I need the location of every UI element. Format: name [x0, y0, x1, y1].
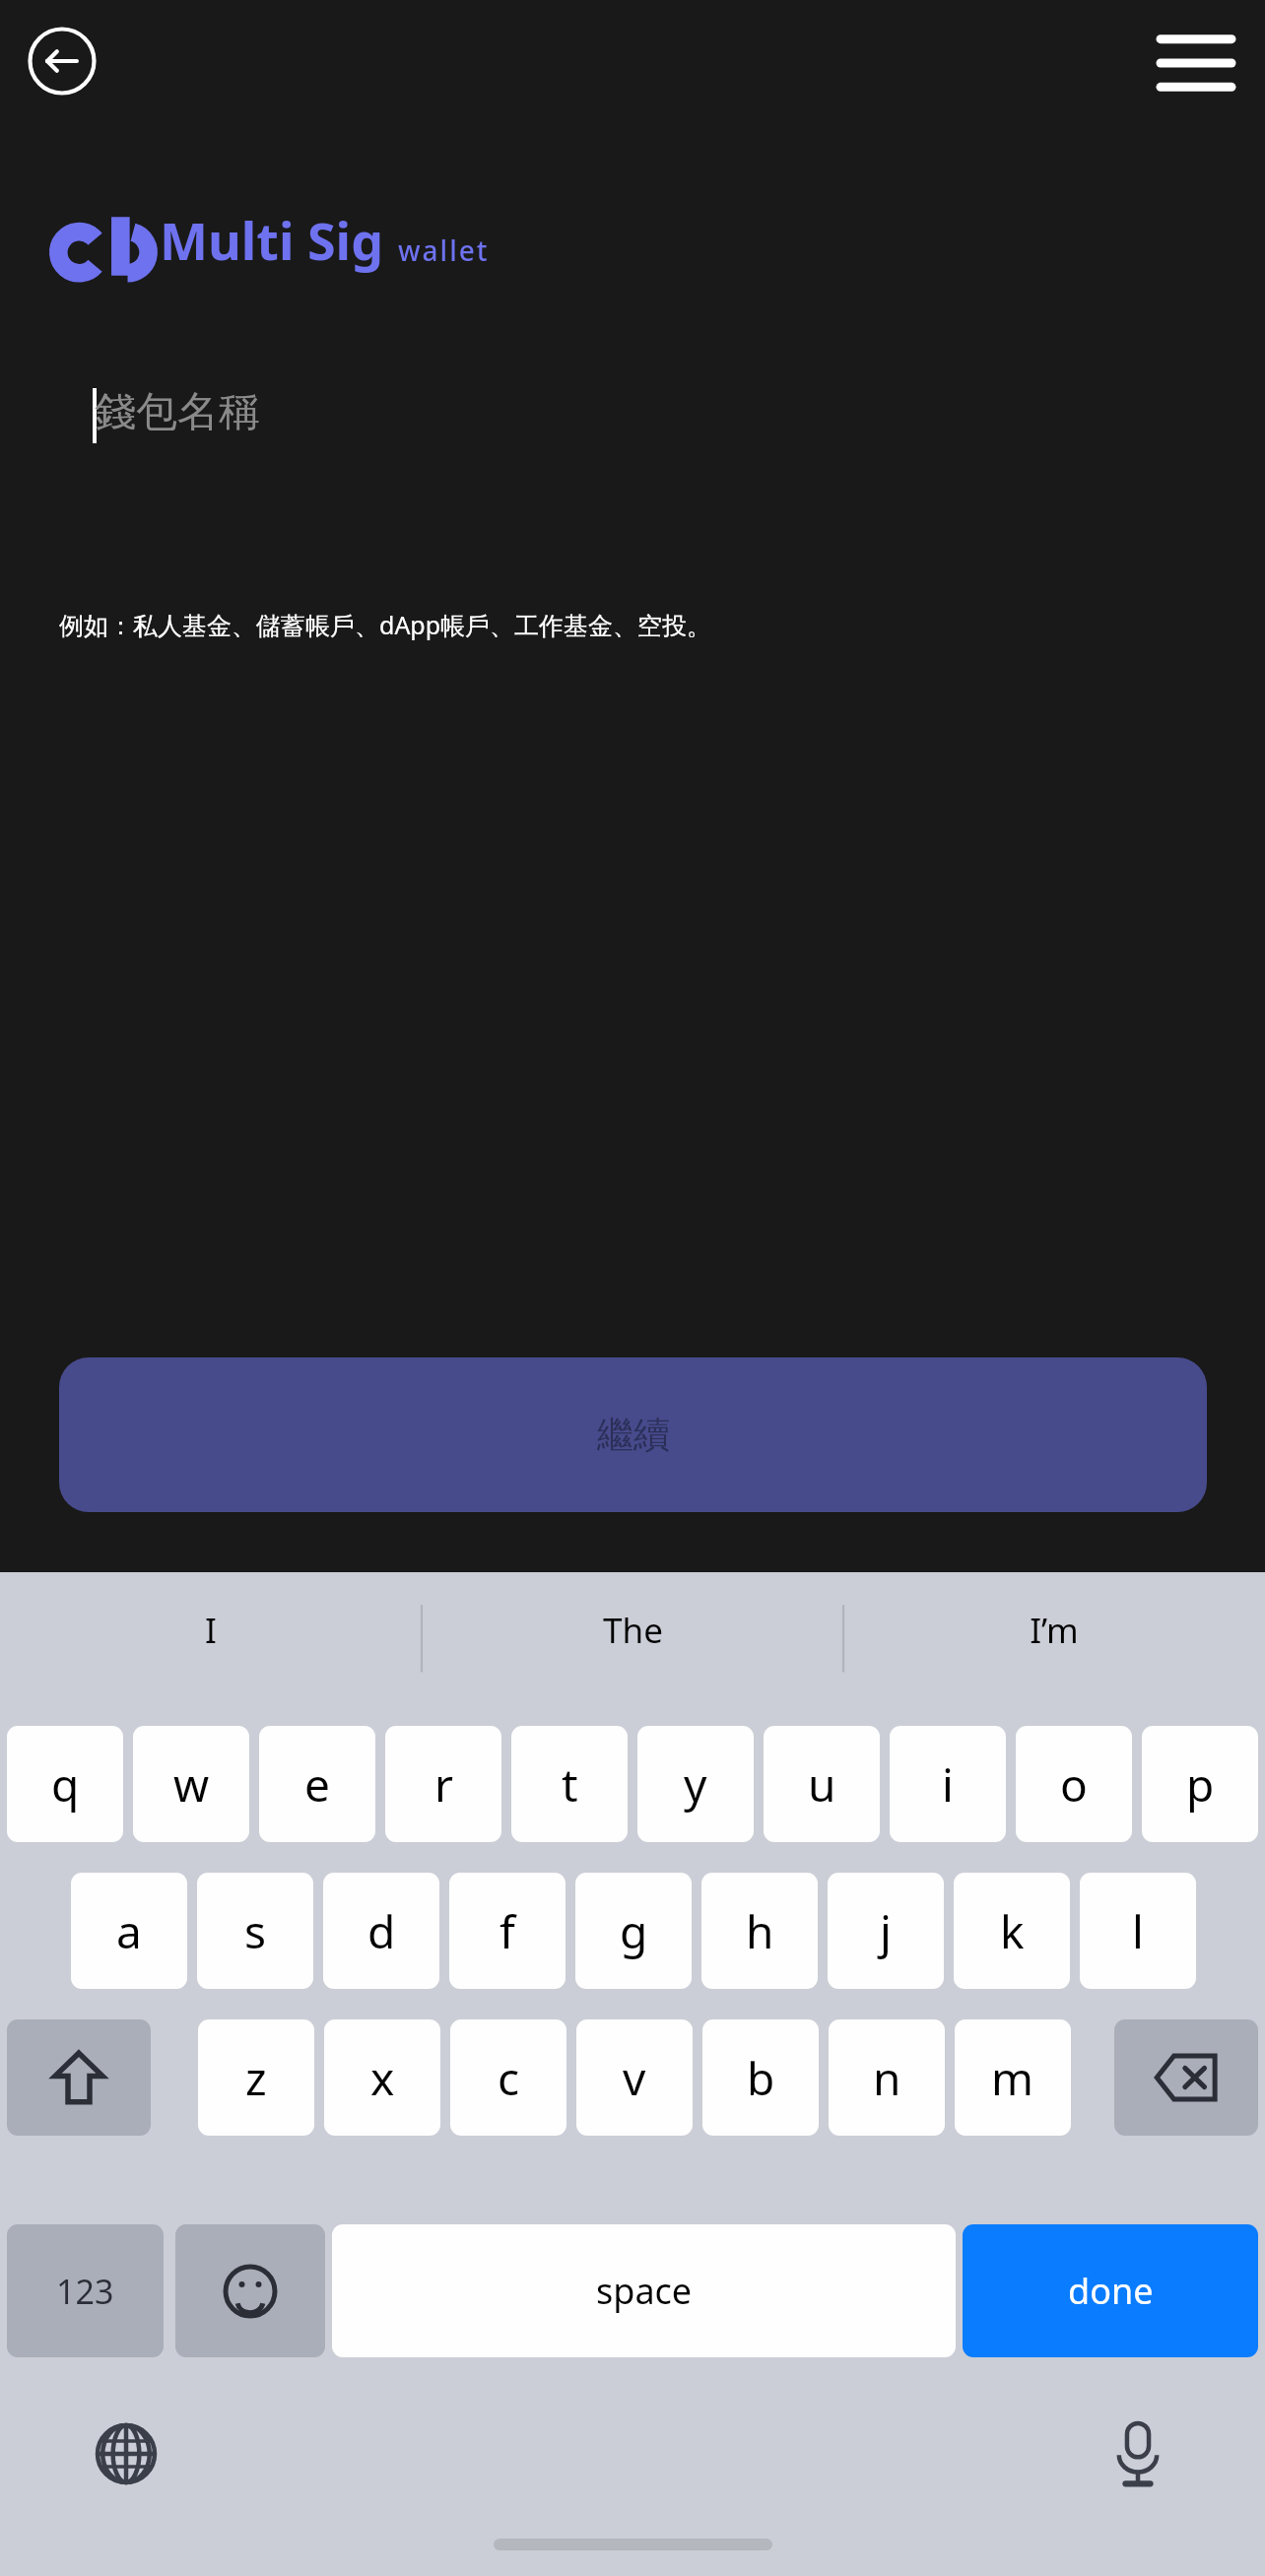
- button[interactable]: 錢包名稱: [57, 364, 1265, 493]
- button[interactable]: v: [576, 2019, 693, 2136]
- button[interactable]: w: [133, 1726, 249, 1842]
- staticText: k: [1000, 1900, 1025, 1962]
- button[interactable]: k: [954, 1873, 1070, 1989]
- staticText: l: [1132, 1900, 1144, 1962]
- button[interactable]: r: [385, 1726, 501, 1842]
- staticText: t: [562, 1753, 578, 1816]
- staticText: e: [304, 1753, 330, 1816]
- staticText: j: [880, 1900, 892, 1962]
- button[interactable]: p: [1142, 1726, 1258, 1842]
- button[interactable]: Emoji: [175, 2224, 325, 2357]
- button[interactable]: l: [1080, 1873, 1196, 1989]
- button[interactable]: q: [7, 1726, 123, 1842]
- staticText: g: [620, 1900, 648, 1962]
- button[interactable]: o: [1016, 1726, 1132, 1842]
- staticText: done: [1068, 2267, 1154, 2315]
- staticText: wallet: [398, 231, 490, 269]
- staticText: o: [1060, 1753, 1088, 1816]
- button[interactable]: n: [829, 2019, 945, 2136]
- staticText: I: [205, 1607, 217, 1654]
- button[interactable]: d: [323, 1873, 439, 1989]
- button[interactable]: g: [575, 1873, 692, 1989]
- button[interactable]: h: [701, 1873, 818, 1989]
- button[interactable]: Shift: [7, 2019, 151, 2136]
- button[interactable]: e: [259, 1726, 375, 1842]
- staticText: 錢包名稱: [95, 386, 260, 438]
- staticText: f: [499, 1900, 515, 1962]
- button[interactable]: I’m: [843, 1572, 1265, 1688]
- button[interactable]: x: [324, 2019, 440, 2136]
- button[interactable]: c: [450, 2019, 566, 2136]
- button[interactable]: a: [71, 1873, 187, 1989]
- staticText: z: [245, 2047, 267, 2109]
- button[interactable]: i: [890, 1726, 1006, 1842]
- staticText: h: [746, 1900, 774, 1962]
- staticText: q: [51, 1753, 80, 1816]
- staticText: v: [623, 2047, 646, 2109]
- staticText: 123: [56, 2269, 114, 2314]
- staticText: c: [498, 2047, 520, 2109]
- button[interactable]: Back: [16, 15, 108, 107]
- button[interactable]: Menu: [1143, 10, 1249, 116]
- staticText: i: [942, 1753, 954, 1816]
- staticText: space: [596, 2267, 693, 2315]
- button[interactable]: space: [332, 2224, 956, 2357]
- staticText: u: [808, 1753, 836, 1816]
- staticText: a: [116, 1900, 142, 1962]
- button[interactable]: b: [702, 2019, 819, 2136]
- staticText: s: [244, 1900, 267, 1962]
- staticText: The: [603, 1607, 663, 1654]
- staticText: 例如：私人基金、儲蓄帳戶、dApp帳戶、工作基金、空投。: [59, 608, 712, 641]
- staticText: n: [873, 2047, 901, 2109]
- button[interactable]: f: [449, 1873, 566, 1989]
- staticText: p: [1186, 1753, 1215, 1816]
- button[interactable]: m: [955, 2019, 1071, 2136]
- staticText: Multi Sig: [160, 205, 384, 275]
- button[interactable]: The: [422, 1572, 843, 1688]
- button[interactable]: y: [637, 1726, 754, 1842]
- staticText: w: [173, 1753, 210, 1816]
- staticText: d: [367, 1900, 396, 1962]
- staticText: m: [991, 2047, 1034, 2109]
- button[interactable]: Change keyboard language: [77, 2405, 175, 2503]
- button[interactable]: Voice input: [1089, 2405, 1187, 2503]
- button[interactable]: s: [197, 1873, 313, 1989]
- button[interactable]: Backspace: [1114, 2019, 1258, 2136]
- staticText: y: [684, 1753, 707, 1816]
- staticText: 繼續: [597, 1412, 670, 1458]
- staticText: I’m: [1030, 1607, 1079, 1654]
- button[interactable]: u: [764, 1726, 880, 1842]
- staticText: x: [370, 2047, 395, 2109]
- button[interactable]: I: [0, 1572, 422, 1688]
- button[interactable]: j: [828, 1873, 944, 1989]
- button[interactable]: z: [198, 2019, 314, 2136]
- button[interactable]: 123: [7, 2224, 164, 2357]
- button[interactable]: 繼續: [59, 1357, 1207, 1512]
- button[interactable]: t: [511, 1726, 628, 1842]
- staticText: b: [747, 2047, 775, 2109]
- staticText: r: [434, 1753, 453, 1816]
- button[interactable]: done: [963, 2224, 1258, 2357]
